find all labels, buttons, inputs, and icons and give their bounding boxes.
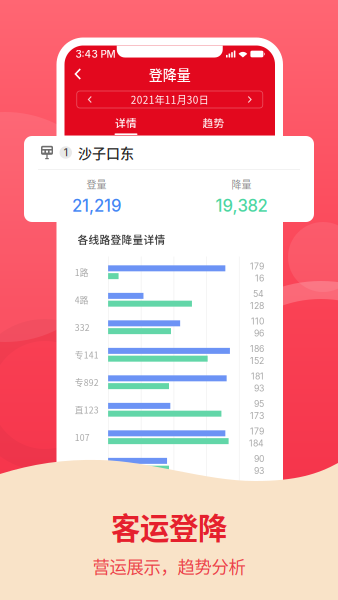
staticText: 直123 <box>75 403 99 416</box>
button[interactable]: 返回 <box>64 63 90 85</box>
staticText: 1路 <box>75 266 89 278</box>
staticText: 93 <box>254 465 264 476</box>
staticText: 详情 <box>115 115 137 130</box>
staticText: 专141 <box>75 348 99 361</box>
button[interactable]: 2021年11月30日 <box>77 91 263 108</box>
staticText: 181 <box>251 371 264 381</box>
staticText: 降量 <box>231 177 251 191</box>
staticText: 173 <box>250 410 264 421</box>
staticText: 3:43 PM <box>75 48 115 60</box>
staticText: 332 <box>75 321 90 333</box>
staticText: 90 <box>254 453 264 464</box>
staticText: 登量 <box>86 177 106 191</box>
staticText: 客运登降 <box>111 505 227 547</box>
staticText: 营运展示，趋势分析 <box>92 553 245 579</box>
staticText: 93 <box>254 383 264 393</box>
staticText: 179 <box>250 426 264 436</box>
staticText: 21,219 <box>72 195 121 216</box>
staticText: 沙子口东 <box>78 142 134 163</box>
staticText: 登降量 <box>149 64 191 84</box>
staticText: 趋势 <box>202 115 224 130</box>
staticText: 110 <box>251 316 264 326</box>
staticText: 179 <box>250 261 264 271</box>
staticText: 107 <box>75 431 90 443</box>
staticText: 2021年11月30日 <box>131 92 209 107</box>
staticText: 19,382 <box>215 195 267 216</box>
button[interactable]: 趋势 <box>170 114 257 135</box>
staticText: 152 <box>250 355 264 366</box>
staticText: 54 <box>253 288 264 299</box>
staticText: 186 <box>250 343 264 354</box>
staticText: 96 <box>254 328 264 338</box>
staticText: 16 <box>255 273 264 283</box>
staticText: 184 <box>249 438 264 448</box>
staticText: 95 <box>254 398 264 409</box>
staticText: 各线路登降量详情 <box>77 231 165 247</box>
staticText: 128 <box>250 300 264 311</box>
staticText: 1 <box>64 146 68 159</box>
staticText: 4路 <box>75 293 89 306</box>
staticText: 专892 <box>75 376 99 388</box>
button[interactable]: 详情 <box>82 114 170 135</box>
